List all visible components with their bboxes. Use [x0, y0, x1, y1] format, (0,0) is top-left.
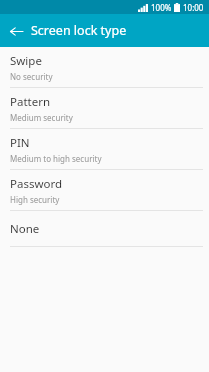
- button[interactable]: None: [0, 211, 209, 246]
- staticText: High security: [10, 194, 60, 205]
- button[interactable]: PIN: [0, 129, 209, 169]
- staticText: Password: [10, 176, 63, 192]
- staticText: Medium security: [10, 112, 73, 123]
- staticText: Medium to high security: [10, 153, 102, 164]
- staticText: 100%: [151, 2, 172, 13]
- button[interactable]: Pattern: [0, 88, 209, 128]
- staticText: Screen lock type: [31, 22, 127, 39]
- staticText: Pattern: [10, 94, 51, 110]
- button[interactable]: Password: [0, 170, 209, 210]
- staticText: 10:00: [183, 2, 204, 13]
- button[interactable]: Swipe: [0, 47, 209, 87]
- staticText: None: [10, 221, 40, 237]
- button[interactable]: Navigate up: [4, 19, 28, 43]
- staticText: PIN: [10, 135, 30, 151]
- staticText: Swipe: [10, 53, 42, 69]
- staticText: No security: [10, 71, 53, 82]
